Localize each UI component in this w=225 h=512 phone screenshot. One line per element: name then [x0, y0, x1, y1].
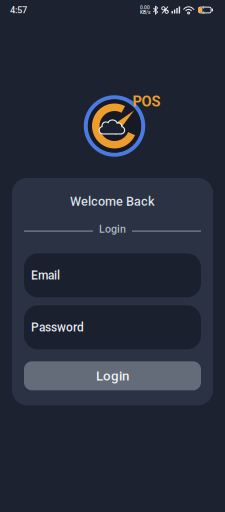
staticText: 16	[202, 5, 204, 15]
staticText: Email	[31, 268, 60, 282]
staticText: Login	[99, 223, 126, 235]
staticText: POS	[132, 93, 160, 110]
staticText: 0.00	[140, 5, 150, 10]
staticText: KB/s	[140, 9, 150, 15]
staticText: Welcome Back	[70, 194, 155, 209]
staticText: Password	[31, 320, 84, 334]
textField[interactable]: Email	[24, 253, 201, 297]
staticText: 4:57	[10, 4, 27, 15]
button[interactable]: Login	[24, 361, 201, 390]
textField[interactable]: Password	[24, 305, 201, 349]
staticText: Login	[96, 368, 129, 384]
